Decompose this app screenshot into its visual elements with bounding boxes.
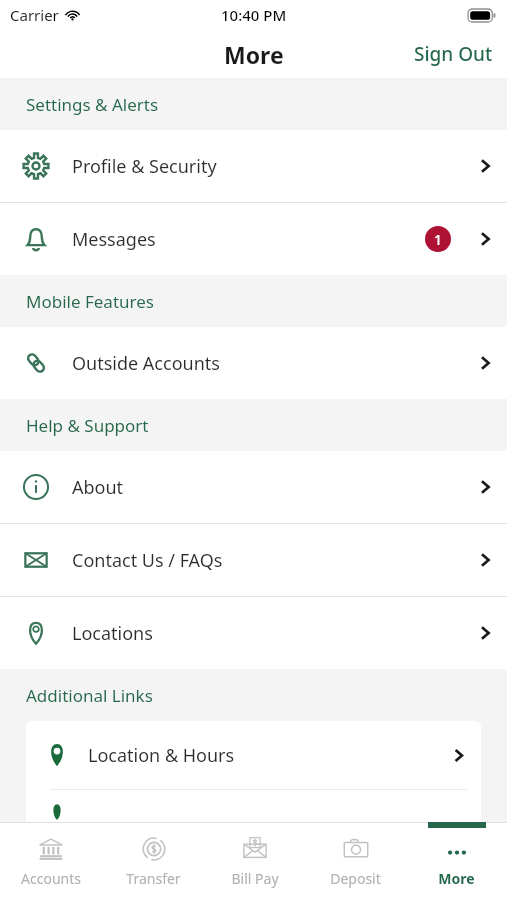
staticText: Mobile Features <box>26 290 154 313</box>
staticText: Location & Hours <box>88 743 435 768</box>
button[interactable]: Profile and Security <box>0 130 507 202</box>
staticText: Help & Support <box>26 414 149 437</box>
other: More <box>442 834 472 864</box>
button[interactable]: Outside Accounts <box>0 327 507 399</box>
staticText: More <box>224 39 284 70</box>
button[interactable]: Contact Us and FAQs <box>0 524 507 596</box>
staticText: Contact Us / FAQs <box>72 548 463 573</box>
other: Deposit <box>341 834 371 864</box>
staticText: Additional Links <box>26 684 153 707</box>
button[interactable]: Deposit <box>305 822 406 900</box>
other: Profile and Security <box>22 152 50 180</box>
button[interactable]: Accounts <box>0 822 102 900</box>
staticText: Accounts <box>21 869 81 888</box>
staticText: 1 <box>434 230 443 249</box>
other: Contact Us and FAQs <box>22 546 50 574</box>
button[interactable]: Location & Hours <box>26 721 481 789</box>
button[interactable]: More <box>406 822 507 900</box>
staticText: Outside Accounts <box>72 351 463 376</box>
staticText: Deposit <box>330 869 381 888</box>
staticText: Carrier <box>10 5 59 25</box>
other: Messages <box>22 225 50 253</box>
staticText: Profile & Security <box>72 154 463 179</box>
other: Locations <box>22 619 50 647</box>
other: Transfer <box>139 834 169 864</box>
button[interactable]: Bill Pay <box>204 822 305 900</box>
staticText: More <box>438 869 475 888</box>
button[interactable]: About <box>0 451 507 523</box>
staticText: Sign Out <box>414 41 493 67</box>
other: Outside Accounts <box>22 349 50 377</box>
button[interactable]: Sign Out <box>400 33 507 75</box>
staticText: Transfer <box>126 869 181 888</box>
staticText: Messages <box>72 227 425 252</box>
button[interactable]: Transfer <box>102 822 204 900</box>
other: Accounts <box>36 834 66 864</box>
button[interactable]: Messages <box>0 203 507 275</box>
button[interactable]: Locations <box>0 597 507 669</box>
other: Bill Pay <box>240 834 270 864</box>
staticText: About <box>72 475 463 500</box>
staticText: Bill Pay <box>231 869 279 888</box>
button[interactable] <box>26 790 481 822</box>
other: About <box>22 473 50 501</box>
staticText: 10:40 PM <box>221 5 287 25</box>
staticText: Locations <box>72 621 463 646</box>
staticText: Settings & Alerts <box>26 93 159 116</box>
